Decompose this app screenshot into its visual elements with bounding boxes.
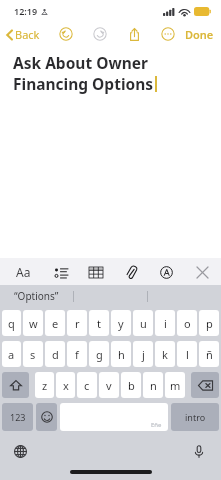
button[interactable]: h	[111, 341, 131, 367]
button[interactable]: u	[133, 310, 153, 336]
staticText: 12:19	[14, 5, 38, 17]
button[interactable]: Checklist	[52, 263, 70, 281]
staticText: x	[63, 378, 69, 393]
button[interactable]: Attach	[122, 263, 140, 281]
staticText: Done	[185, 27, 214, 42]
staticText: ñ	[206, 347, 213, 362]
button[interactable]: l	[177, 341, 197, 367]
staticText: v	[106, 378, 112, 393]
button[interactable]: Change keyboard	[10, 441, 30, 461]
button[interactable]: Space	[60, 403, 168, 431]
staticText: m	[170, 378, 181, 393]
button[interactable]: Shift	[2, 372, 29, 398]
button[interactable]: n	[143, 372, 163, 398]
staticText: z	[42, 378, 48, 393]
staticText: t	[97, 316, 101, 331]
staticText: b	[128, 378, 135, 393]
button[interactable]: More	[159, 25, 177, 43]
staticText: intro	[185, 411, 206, 423]
button[interactable]: 123	[2, 403, 33, 431]
button[interactable]: m	[165, 372, 185, 398]
button[interactable]: v	[99, 372, 119, 398]
staticText: i	[164, 316, 167, 331]
staticText: k	[162, 347, 168, 362]
button[interactable]: Table	[87, 263, 105, 281]
staticText: q	[8, 316, 15, 331]
staticText: p	[206, 316, 213, 331]
staticText: f	[75, 347, 79, 362]
button[interactable]: Emoji	[36, 403, 57, 431]
staticText: “Options”	[14, 289, 59, 303]
button[interactable]: Close keyboard	[193, 263, 211, 281]
staticText: y	[118, 316, 124, 331]
button[interactable]: k	[155, 341, 175, 367]
staticText: o	[184, 316, 191, 331]
button[interactable]: w	[23, 310, 43, 336]
button[interactable]: z	[35, 372, 54, 398]
button[interactable]: g	[89, 341, 109, 367]
staticText: r	[75, 316, 80, 331]
staticText: c	[84, 378, 90, 393]
button[interactable]: Redo	[91, 25, 109, 43]
button[interactable]: Undo	[57, 25, 75, 43]
button[interactable]: Back	[0, 25, 46, 44]
button[interactable]: y	[111, 310, 131, 336]
staticText: l	[186, 347, 189, 362]
button[interactable]: intro	[171, 403, 219, 431]
button[interactable]: Backspace	[191, 372, 219, 398]
staticText: n	[150, 378, 157, 393]
button[interactable]: s	[23, 341, 43, 367]
button[interactable]: q	[2, 310, 21, 336]
staticText: 123	[10, 411, 26, 423]
button[interactable]: r	[67, 310, 87, 336]
button[interactable]: Text format	[16, 264, 31, 280]
staticText: a	[8, 347, 15, 362]
staticText: d	[52, 347, 59, 362]
button[interactable]: i	[155, 310, 175, 336]
button[interactable]: Markup	[157, 263, 175, 281]
button[interactable]: c	[77, 372, 97, 398]
button[interactable]: d	[45, 341, 65, 367]
staticText: w	[29, 316, 38, 331]
staticText: h	[118, 347, 125, 362]
staticText: Financing Options	[13, 73, 154, 94]
button[interactable]: o	[177, 310, 197, 336]
staticText: j	[142, 347, 145, 362]
button[interactable]: p	[199, 310, 219, 336]
button[interactable]: j	[133, 341, 153, 367]
staticText: u	[140, 316, 147, 331]
button[interactable]: a	[2, 341, 21, 367]
button[interactable]: b	[121, 372, 141, 398]
button[interactable]: Dictate	[189, 441, 209, 461]
button[interactable]: ñ	[199, 341, 219, 367]
button[interactable]: “Options”	[0, 285, 73, 307]
staticText: Ask About Owner	[13, 52, 148, 73]
button[interactable]: Share	[125, 25, 143, 43]
staticText: g	[96, 347, 103, 362]
staticText: Back	[15, 27, 40, 42]
staticText: Eñe	[151, 421, 162, 429]
staticText: e	[52, 316, 59, 331]
button[interactable]: f	[67, 341, 87, 367]
button[interactable]: Done	[178, 25, 221, 44]
staticText: s	[30, 347, 36, 362]
staticText: Aa	[16, 264, 31, 280]
button[interactable]: x	[56, 372, 75, 398]
button[interactable]: t	[89, 310, 109, 336]
button[interactable]: e	[45, 310, 65, 336]
